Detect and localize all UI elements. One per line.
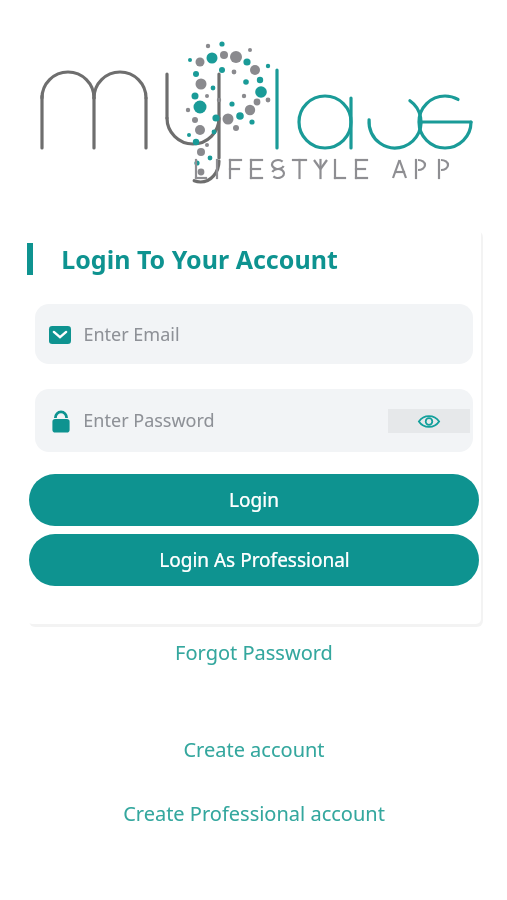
button[interactable]: Login: [29, 474, 479, 526]
staticText: Forgot Password: [175, 639, 333, 666]
staticText: Login As Professional: [159, 547, 350, 573]
staticText: Enter Email: [83, 322, 180, 347]
button[interactable]: Show password: [388, 409, 470, 433]
button[interactable]: Enter Password: [35, 389, 473, 452]
staticText: Create account: [183, 736, 325, 763]
button[interactable]: Create account: [0, 729, 507, 769]
staticText: Enter Password: [83, 408, 215, 433]
button[interactable]: Forgot Password: [0, 632, 507, 672]
button[interactable]: Create Professional account: [0, 793, 507, 833]
button[interactable]: Enter Email: [35, 304, 473, 364]
staticText: Login To Your Account: [61, 242, 338, 276]
staticText: Login: [229, 487, 279, 513]
staticText: Create Professional account: [123, 800, 385, 827]
button[interactable]: Login As Professional: [29, 534, 479, 586]
